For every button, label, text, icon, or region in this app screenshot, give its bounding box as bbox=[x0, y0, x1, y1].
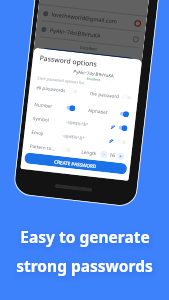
button[interactable]: Toggle bbox=[68, 88, 77, 95]
staticText: the password bbox=[90, 90, 120, 99]
staticText: PyAki~74s\B9vYuKA bbox=[49, 26, 101, 39]
staticText: Save password options for bbox=[37, 75, 85, 85]
button[interactable]: Alphabet bbox=[87, 103, 130, 122]
staticText: ~!@#$%^&* bbox=[65, 120, 89, 127]
button[interactable]: Toggle bbox=[122, 94, 131, 101]
staticText: ell passwords bbox=[36, 84, 67, 93]
button[interactable]: Increase length bbox=[117, 153, 125, 160]
staticText: Password options bbox=[39, 53, 98, 69]
button[interactable]: ell passwords bbox=[36, 80, 78, 99]
button[interactable]: Symbol bbox=[32, 111, 128, 135]
button[interactable]: lovetheworld@gmail.com bbox=[42, 5, 142, 32]
button[interactable]: Number bbox=[34, 97, 76, 115]
button[interactable]: Pattern to... bbox=[29, 139, 71, 157]
staticText: Length bbox=[81, 149, 98, 156]
button[interactable]: Emoji bbox=[31, 125, 127, 149]
staticText: - bbox=[103, 151, 106, 158]
staticText: Easy to generate bbox=[20, 226, 150, 247]
button[interactable]: CREATE PASSWORD bbox=[24, 152, 127, 175]
staticText: ~!@#$%^&* bbox=[62, 133, 85, 141]
button[interactable]: PyAki~74s\B9vYuKA bbox=[40, 21, 140, 48]
button[interactable]: Toggle bbox=[118, 124, 128, 131]
staticText: Excellent bbox=[80, 45, 97, 52]
staticText: PyAki~74s\B9vYuKA bbox=[73, 68, 114, 79]
staticText: Excellent bbox=[86, 77, 101, 82]
staticText: Emoji bbox=[31, 129, 44, 136]
button[interactable]: CREATE PASSWORD bbox=[41, 47, 134, 68]
button[interactable]: Toggle bbox=[120, 111, 129, 118]
staticText: CREATE PASSWORD bbox=[54, 159, 97, 169]
button[interactable]: Toggle bbox=[61, 146, 71, 153]
staticText: Number bbox=[34, 101, 53, 109]
staticText: 16 bbox=[109, 152, 116, 159]
staticText: CREATE PASSWORD bbox=[67, 52, 109, 63]
staticText: Pattern to... bbox=[30, 143, 56, 152]
staticText: strong passwords bbox=[16, 255, 153, 276]
button[interactable]: Toggle bbox=[66, 105, 76, 112]
staticText: Symbol bbox=[33, 115, 49, 123]
staticText: lovetheworld@gmail.com bbox=[51, 10, 118, 25]
button[interactable]: Toggle bbox=[117, 138, 126, 145]
staticText: + bbox=[119, 153, 123, 160]
button[interactable]: the password bbox=[89, 86, 132, 105]
button[interactable]: Decrease length bbox=[100, 151, 108, 158]
staticText: Alphabet bbox=[88, 107, 108, 115]
